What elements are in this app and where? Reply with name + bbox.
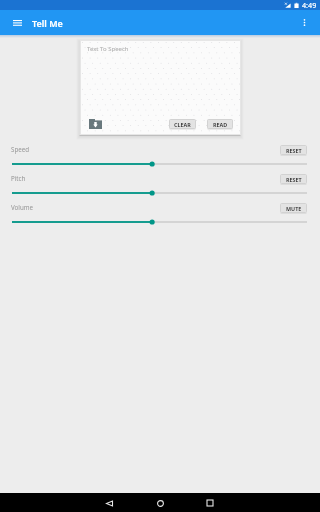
button[interactable]: Volume slider xyxy=(12,218,307,226)
button[interactable]: Open navigation drawer xyxy=(7,12,28,33)
button[interactable]: More options xyxy=(294,12,315,33)
button[interactable]: READ xyxy=(207,119,233,129)
button[interactable]: CLEAR xyxy=(169,119,196,129)
button[interactable]: MUTE xyxy=(280,203,307,213)
staticText: READ xyxy=(213,121,228,128)
button[interactable]: RESET xyxy=(280,174,307,184)
staticText: MUTE xyxy=(286,205,302,212)
staticText: RESET xyxy=(286,147,302,154)
staticText: CLEAR xyxy=(174,121,191,128)
staticText: Pitch xyxy=(11,174,26,182)
staticText: RESET xyxy=(286,176,302,183)
staticText: Speed xyxy=(11,145,29,153)
button[interactable]: Open file xyxy=(89,119,102,129)
staticText: Tell Me xyxy=(32,17,63,29)
staticText: Text To Speech xyxy=(87,45,129,53)
button[interactable]: Pitch slider xyxy=(12,189,307,197)
button[interactable]: Home xyxy=(154,497,166,509)
button[interactable]: RESET xyxy=(280,145,307,155)
button[interactable]: Speed slider xyxy=(12,160,307,168)
staticText: 4:49 xyxy=(302,0,317,10)
button[interactable]: Recent apps xyxy=(204,497,216,509)
staticText: Volume xyxy=(11,203,34,211)
button[interactable]: Back xyxy=(103,497,115,509)
